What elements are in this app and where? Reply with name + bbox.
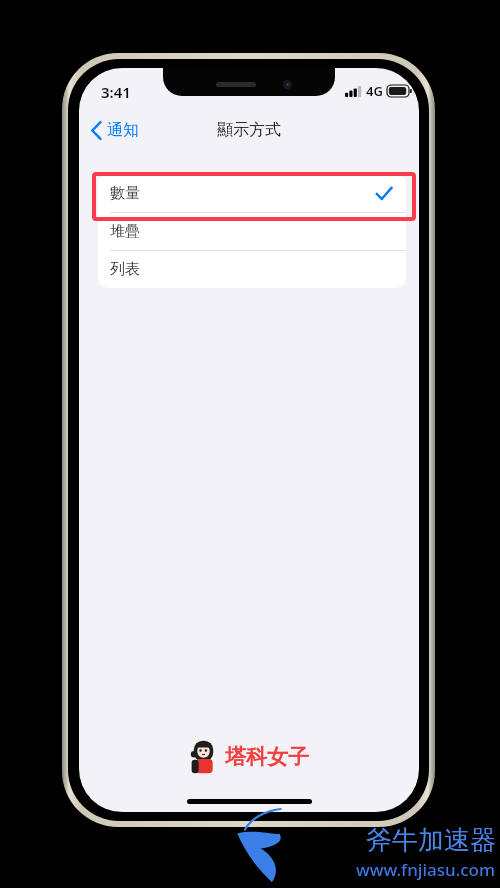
staticText: 通知: [107, 120, 139, 140]
button[interactable]: 通知: [87, 116, 143, 144]
staticText: 顯示方式: [217, 120, 281, 140]
button[interactable]: 數量: [98, 174, 406, 212]
staticText: www.fnjiasu.com: [356, 858, 496, 881]
staticText: 列表: [110, 260, 140, 279]
staticText: 4G: [366, 82, 383, 100]
staticText: 堆疊: [110, 222, 140, 241]
staticText: 斧牛加速器: [366, 824, 496, 857]
staticText: 數量: [110, 184, 140, 203]
other: Brand logo: [190, 740, 217, 774]
button[interactable]: 列表: [98, 251, 406, 288]
button[interactable]: 堆疊: [98, 213, 406, 250]
staticText: 塔科女子: [225, 744, 309, 770]
staticText: 3:41: [101, 82, 131, 102]
